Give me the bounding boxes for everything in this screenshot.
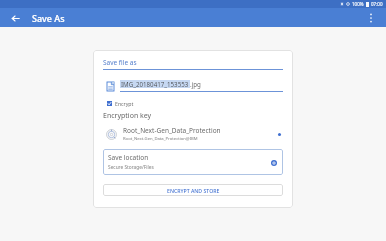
- button[interactable]: IMG_20180417_153553: [103, 80, 283, 92]
- staticText: Save location: [108, 153, 149, 162]
- staticText: Encryption key: [103, 111, 152, 121]
- button[interactable]: Select encryption key: [275, 130, 283, 138]
- button[interactable]: More options: [362, 9, 380, 27]
- staticText: Secure Storage/Files: [108, 164, 154, 171]
- staticText: Root_Next-Gen_Data_Protection@IBM: [123, 136, 198, 142]
- button[interactable]: Save location: [103, 149, 283, 175]
- button[interactable]: ENCRYPT AND STORE: [103, 184, 283, 196]
- staticText: Save As: [32, 12, 65, 24]
- button[interactable]: Save location selected: [269, 158, 278, 167]
- staticText: Save file as: [103, 58, 137, 67]
- staticText: 100%: [352, 1, 364, 7]
- staticText: Root_Next-Gen_Data_Protection: [123, 126, 221, 135]
- button[interactable]: Root_Next-Gen_Data_Protection: [103, 126, 283, 142]
- button[interactable]: Encrypt: [103, 100, 134, 107]
- staticText: ENCRYPT AND STORE: [167, 187, 220, 194]
- staticText: Encrypt: [115, 100, 134, 107]
- staticText: 07:00: [371, 1, 383, 7]
- staticText: IMG_20180417_153553: [121, 80, 189, 88]
- button[interactable]: Back: [6, 9, 24, 27]
- staticText: .jpg: [190, 80, 201, 88]
